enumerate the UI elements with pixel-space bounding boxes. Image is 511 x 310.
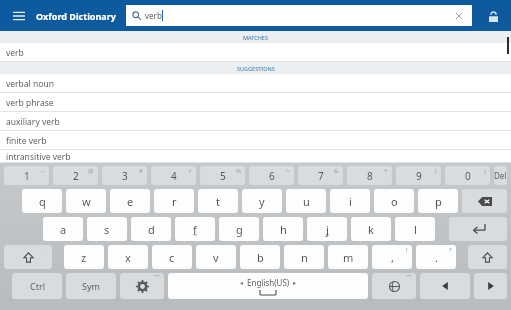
button[interactable]: q: [22, 189, 62, 213]
staticText: verb phrase: [6, 97, 54, 109]
button[interactable]: 3: [102, 166, 147, 185]
button[interactable]: t: [198, 189, 238, 213]
button[interactable]: auxiliary verb: [0, 112, 511, 131]
button[interactable]: c: [152, 245, 192, 269]
staticText: 8: [367, 169, 373, 183]
button[interactable]: x: [108, 245, 148, 269]
button[interactable]: k: [351, 217, 391, 241]
staticText: 2: [73, 169, 79, 183]
staticText: &: [334, 167, 339, 175]
button[interactable]: .: [416, 245, 456, 269]
staticText: ^: [286, 167, 290, 175]
button[interactable]: Keyboard settings: [120, 273, 164, 299]
button[interactable]: Move cursor right: [474, 273, 507, 299]
staticText: verb: [145, 10, 162, 21]
staticText: ,: [391, 250, 394, 265]
button[interactable]: Delete: [494, 166, 507, 185]
button[interactable]: n: [284, 245, 324, 269]
button[interactable]: Shift: [4, 245, 52, 269]
button[interactable]: verbal noun: [0, 74, 511, 93]
staticText: Oxford Dictionary: [36, 10, 116, 22]
button[interactable]: 7: [298, 166, 343, 185]
button[interactable]: g: [219, 217, 259, 241]
button[interactable]: Lock: [481, 4, 505, 28]
button[interactable]: w: [66, 189, 106, 213]
button[interactable]: 1: [4, 166, 49, 185]
staticText: finite verb: [6, 135, 47, 147]
button[interactable]: 8: [347, 166, 392, 185]
button[interactable]: f: [175, 217, 215, 241]
button[interactable]: y: [242, 189, 282, 213]
button[interactable]: verb phrase: [0, 93, 511, 112]
staticText: ▸: [293, 279, 297, 286]
staticText: !: [406, 246, 408, 254]
staticText: i: [349, 194, 352, 209]
button[interactable]: z: [64, 245, 104, 269]
button[interactable]: v: [196, 245, 236, 269]
staticText: o: [391, 194, 398, 209]
staticText: r: [172, 194, 177, 209]
button[interactable]: ,: [372, 245, 412, 269]
staticText: w: [82, 194, 91, 209]
button[interactable]: Open navigation menu: [6, 3, 32, 29]
button[interactable]: 9: [396, 166, 441, 185]
button[interactable]: Space: [168, 273, 368, 299]
button[interactable]: Change language: [372, 273, 416, 299]
staticText: @: [88, 167, 94, 175]
staticText: SUGGESTIONS: [237, 65, 275, 72]
staticText: /: [189, 167, 192, 175]
button[interactable]: 4: [151, 166, 196, 185]
staticText: •••: [406, 273, 412, 280]
staticText: MATCHES: [243, 34, 268, 41]
button[interactable]: 2: [53, 166, 98, 185]
button[interactable]: Move cursor left: [420, 273, 470, 299]
button[interactable]: p: [418, 189, 458, 213]
button[interactable]: o: [374, 189, 414, 213]
staticText: 6: [269, 169, 275, 183]
button[interactable]: i: [330, 189, 370, 213]
button[interactable]: h: [263, 217, 303, 241]
button[interactable]: r: [154, 189, 194, 213]
staticText: •••: [154, 273, 160, 280]
staticText: 4: [171, 169, 177, 183]
button[interactable]: a: [43, 217, 83, 241]
button[interactable]: finite verb: [0, 131, 511, 150]
staticText: c: [169, 250, 175, 265]
staticText: .: [435, 250, 438, 265]
button[interactable]: Clear search: [452, 9, 466, 23]
staticText: k: [368, 222, 374, 237]
button[interactable]: e: [110, 189, 150, 213]
button[interactable]: 5: [200, 166, 245, 185]
button[interactable]: verb: [126, 5, 472, 26]
staticText: e: [127, 194, 134, 209]
staticText: n: [301, 250, 308, 265]
button[interactable]: 0: [445, 166, 490, 185]
button[interactable]: l: [395, 217, 435, 241]
button[interactable]: Enter: [449, 217, 507, 241]
staticText: Del: [494, 170, 507, 181]
staticText: auxiliary verb: [6, 116, 60, 128]
staticText: a: [60, 222, 67, 237]
button[interactable]: j: [307, 217, 347, 241]
staticText: j: [326, 222, 329, 237]
button[interactable]: Shift: [468, 245, 507, 269]
staticText: v: [213, 250, 219, 265]
button[interactable]: 6: [249, 166, 294, 185]
button[interactable]: Ctrl: [12, 273, 62, 299]
staticText: %: [236, 167, 241, 175]
button[interactable]: intransitive verb: [0, 150, 511, 163]
staticText: x: [125, 250, 131, 265]
button[interactable]: s: [87, 217, 127, 241]
staticText: #: [139, 167, 143, 175]
button[interactable]: d: [131, 217, 171, 241]
button[interactable]: Sym: [66, 273, 116, 299]
button[interactable]: m: [328, 245, 368, 269]
button[interactable]: Backspace: [462, 189, 507, 213]
staticText: 3: [122, 169, 128, 183]
button[interactable]: b: [240, 245, 280, 269]
staticText: z: [81, 250, 87, 265]
staticText: s: [104, 222, 110, 237]
button[interactable]: u: [286, 189, 326, 213]
button[interactable]: verb: [0, 43, 511, 62]
staticText: d: [148, 222, 155, 237]
